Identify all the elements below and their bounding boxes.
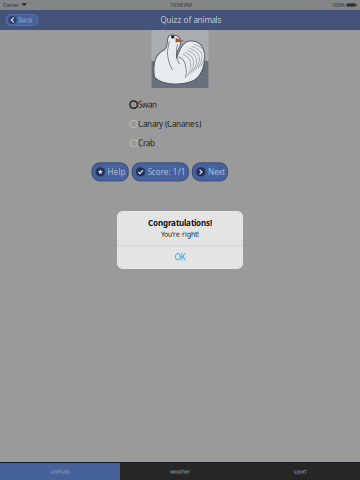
staticText: Quizz of animals bbox=[160, 15, 221, 25]
button[interactable]: Help bbox=[92, 163, 128, 181]
staticText: Crab bbox=[138, 138, 155, 148]
staticText: 100% bbox=[331, 1, 344, 9]
button[interactable]: Next bbox=[192, 163, 228, 181]
staticText: animals bbox=[50, 468, 69, 475]
button[interactable]: Score: 1/1 bbox=[132, 163, 188, 181]
staticText: 10:58 PM bbox=[170, 1, 192, 9]
staticText: Congratulations! bbox=[148, 217, 212, 228]
staticText: Back bbox=[18, 16, 33, 24]
staticText: sport bbox=[293, 468, 306, 475]
staticText: weather bbox=[170, 468, 190, 475]
button[interactable]: Canary (Canaries) bbox=[130, 114, 230, 134]
button[interactable]: Swan bbox=[130, 95, 230, 114]
staticText: Score: 1/1 bbox=[148, 167, 186, 177]
button[interactable]: sport bbox=[240, 463, 360, 480]
button[interactable]: OK bbox=[117, 245, 243, 269]
button[interactable]: Back bbox=[6, 14, 38, 25]
staticText: OK bbox=[174, 252, 185, 262]
staticText: Swan bbox=[138, 99, 157, 110]
staticText: Next bbox=[208, 167, 225, 177]
staticText: Carrier bbox=[3, 1, 19, 9]
button[interactable]: weather bbox=[120, 463, 240, 480]
button[interactable]: Crab bbox=[130, 134, 230, 153]
staticText: Help bbox=[107, 167, 125, 177]
staticText: You're right! bbox=[161, 230, 199, 238]
button[interactable]: animals bbox=[0, 463, 120, 480]
staticText: Canary (Canaries) bbox=[138, 119, 201, 129]
